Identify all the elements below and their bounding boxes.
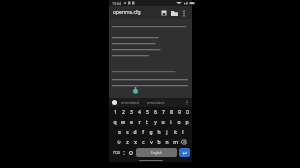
button[interactable]: 2 (119, 108, 127, 117)
button[interactable]: 6 (151, 108, 159, 117)
staticText: 2 (122, 109, 125, 116)
staticText: w (121, 119, 125, 126)
staticText: b (157, 139, 161, 146)
button[interactable]: e (127, 117, 135, 127)
button[interactable]: p (183, 117, 191, 127)
staticText: 13:04 (112, 1, 121, 6)
button[interactable]: 4 (135, 108, 143, 117)
button[interactable]: b (155, 137, 163, 147)
button[interactable]: Open file (170, 8, 179, 17)
button[interactable]: i (167, 117, 175, 127)
button[interactable]: emulates (147, 100, 165, 105)
staticText: m (173, 139, 178, 146)
button[interactable]: 9 (175, 108, 183, 117)
button[interactable]: y (151, 117, 159, 127)
button[interactable]: o (175, 117, 183, 127)
button[interactable]: v (147, 137, 155, 147)
button[interactable]: z (123, 137, 131, 147)
button[interactable]: n (163, 137, 171, 147)
staticText: n (165, 139, 169, 146)
button[interactable]: Delete (179, 137, 187, 147)
button[interactable]: emulated (121, 100, 139, 105)
button[interactable]: 3 (127, 108, 135, 117)
staticText: 3 (130, 109, 133, 116)
staticText: k (174, 129, 177, 136)
button[interactable]: g (147, 127, 155, 137)
staticText: i (170, 119, 172, 126)
staticText: ?123 (113, 151, 120, 155)
button[interactable]: a (115, 127, 123, 137)
staticText: z (126, 139, 129, 146)
staticText: e (130, 119, 133, 126)
staticText: g (149, 129, 153, 136)
staticText: 1 (114, 109, 117, 116)
button[interactable]: j (163, 127, 171, 137)
staticText: 8 (170, 109, 173, 116)
button[interactable]: q (111, 117, 119, 127)
button[interactable]: Space (136, 148, 177, 157)
staticText: d (133, 129, 137, 136)
button[interactable]: 5 (143, 108, 151, 117)
staticText: p (185, 119, 189, 126)
button[interactable]: u (159, 117, 167, 127)
button[interactable]: Expand suggestions (184, 100, 189, 105)
staticText: c (142, 139, 145, 146)
button[interactable]: t (143, 117, 151, 127)
button[interactable]: r (135, 117, 143, 127)
button[interactable]: x (131, 137, 139, 147)
button[interactable] (109, 19, 192, 98)
staticText: o (177, 119, 181, 126)
staticText: j (166, 129, 168, 136)
button[interactable]: w (119, 117, 127, 127)
staticText: emulates (147, 100, 165, 105)
staticText: s (126, 129, 129, 136)
button[interactable]: 1 (111, 108, 119, 117)
staticText: h (157, 129, 161, 136)
button[interactable]: Keyboard settings (127, 148, 134, 157)
staticText: 5 (146, 109, 149, 116)
staticText: English (151, 151, 162, 155)
button[interactable]: h (155, 127, 163, 137)
button[interactable]: Shift (115, 137, 123, 147)
button[interactable]: d (131, 127, 139, 137)
staticText: 4 (138, 109, 141, 116)
button[interactable]: l (179, 127, 187, 137)
staticText: 7 (162, 109, 165, 116)
staticText: y (154, 119, 157, 126)
button[interactable]: ?123 (111, 148, 121, 157)
staticText: f (142, 129, 144, 136)
staticText: q (113, 119, 117, 126)
staticText: u (161, 119, 165, 126)
staticText: a (118, 129, 121, 136)
staticText: v (150, 139, 153, 146)
button[interactable]: 7 (159, 108, 167, 117)
button[interactable]: Enter (179, 148, 190, 157)
staticText: x (134, 139, 137, 146)
button[interactable]: Save (159, 8, 168, 17)
staticText: r (138, 119, 141, 126)
staticText: l (182, 129, 184, 136)
staticText: t (146, 119, 148, 126)
staticText: emulated (121, 100, 139, 105)
staticText: openms.cfg (113, 9, 141, 16)
button[interactable]: Comma (121, 148, 127, 157)
button[interactable]: 8 (167, 108, 175, 117)
button[interactable]: 0 (183, 108, 191, 117)
staticText: 0 (186, 109, 189, 116)
staticText: 9 (178, 109, 181, 116)
button[interactable]: More options (180, 9, 188, 17)
button[interactable]: m (171, 137, 179, 147)
button[interactable]: f (139, 127, 147, 137)
staticText: 6 (154, 109, 157, 116)
button[interactable]: k (171, 127, 179, 137)
button[interactable]: s (123, 127, 131, 137)
button[interactable]: c (139, 137, 147, 147)
button[interactable]: Google Assistant (112, 100, 117, 105)
